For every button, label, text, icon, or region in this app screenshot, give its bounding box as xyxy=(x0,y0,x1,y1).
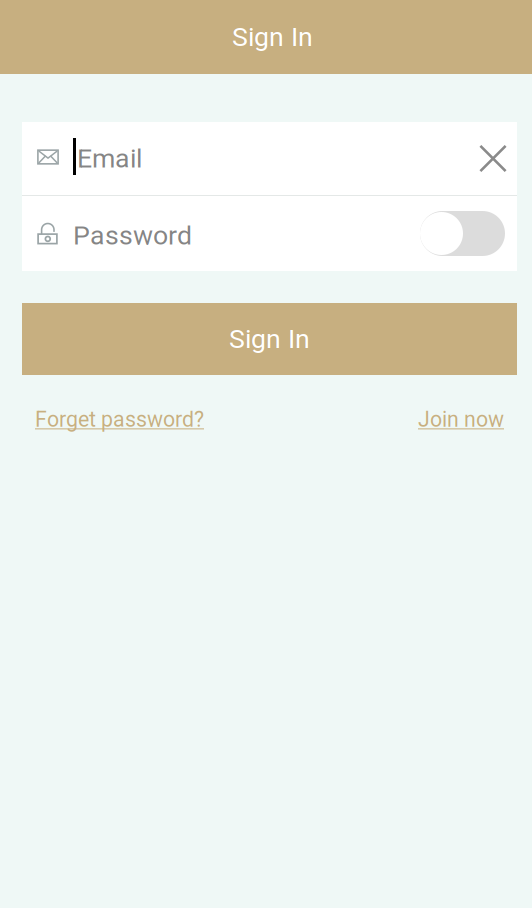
button[interactable]: Join now xyxy=(418,407,504,432)
staticText: Sign In xyxy=(232,21,313,53)
staticText: Join now xyxy=(418,407,504,432)
button[interactable]: Show password xyxy=(420,196,517,271)
staticText: Password xyxy=(73,220,192,251)
staticText: Forget password? xyxy=(35,407,204,432)
button[interactable]: Email xyxy=(22,122,479,195)
button[interactable]: Password xyxy=(22,196,420,271)
button[interactable]: Sign In xyxy=(22,303,517,375)
staticText: Email xyxy=(77,143,142,174)
staticText: Sign In xyxy=(229,323,310,355)
button[interactable]: Clear email xyxy=(479,122,517,195)
button[interactable]: Forget password? xyxy=(35,407,204,432)
